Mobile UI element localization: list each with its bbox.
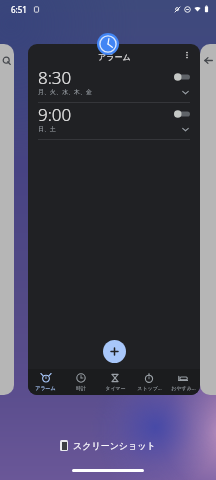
button[interactable]: 8:30 [28,66,200,102]
button[interactable]: More options [180,48,194,62]
staticText: ストップ… [137,385,162,392]
button[interactable]: スクリーンショット [60,440,156,451]
button[interactable]: アラーム [28,369,63,395]
button[interactable]: Expand alarm [180,87,190,97]
staticText: 月、火、水、木、金 [38,88,92,96]
button[interactable]: Toggle alarm [174,73,190,81]
button[interactable]: Previous app [0,44,14,395]
button[interactable]: おやすみ… [166,369,200,395]
button[interactable]: タイマー [98,369,132,395]
staticText: 日、土 [38,125,56,133]
staticText: アラーム [35,385,56,391]
staticText: 6:51 [11,4,27,15]
staticText: おやすみ… [171,385,196,392]
staticText: スクリーンショット [73,440,156,451]
staticText: 時計 [76,385,86,391]
button[interactable]: Toggle alarm [174,110,190,118]
button[interactable]: 9:00 [28,103,200,139]
button[interactable]: アラーム [28,44,200,395]
button[interactable]: Clock app icon [97,33,119,55]
button[interactable]: ストップ… [132,369,166,395]
staticText: 8:30 [38,66,72,87]
staticText: タイマー [105,385,126,391]
staticText: 9:00 [38,103,72,124]
button[interactable]: Add alarm [103,340,126,363]
button[interactable]: 時計 [63,369,98,395]
button[interactable]: Expand alarm [180,124,190,134]
button[interactable]: Next app [200,44,216,395]
staticText: アラーム [98,52,131,62]
